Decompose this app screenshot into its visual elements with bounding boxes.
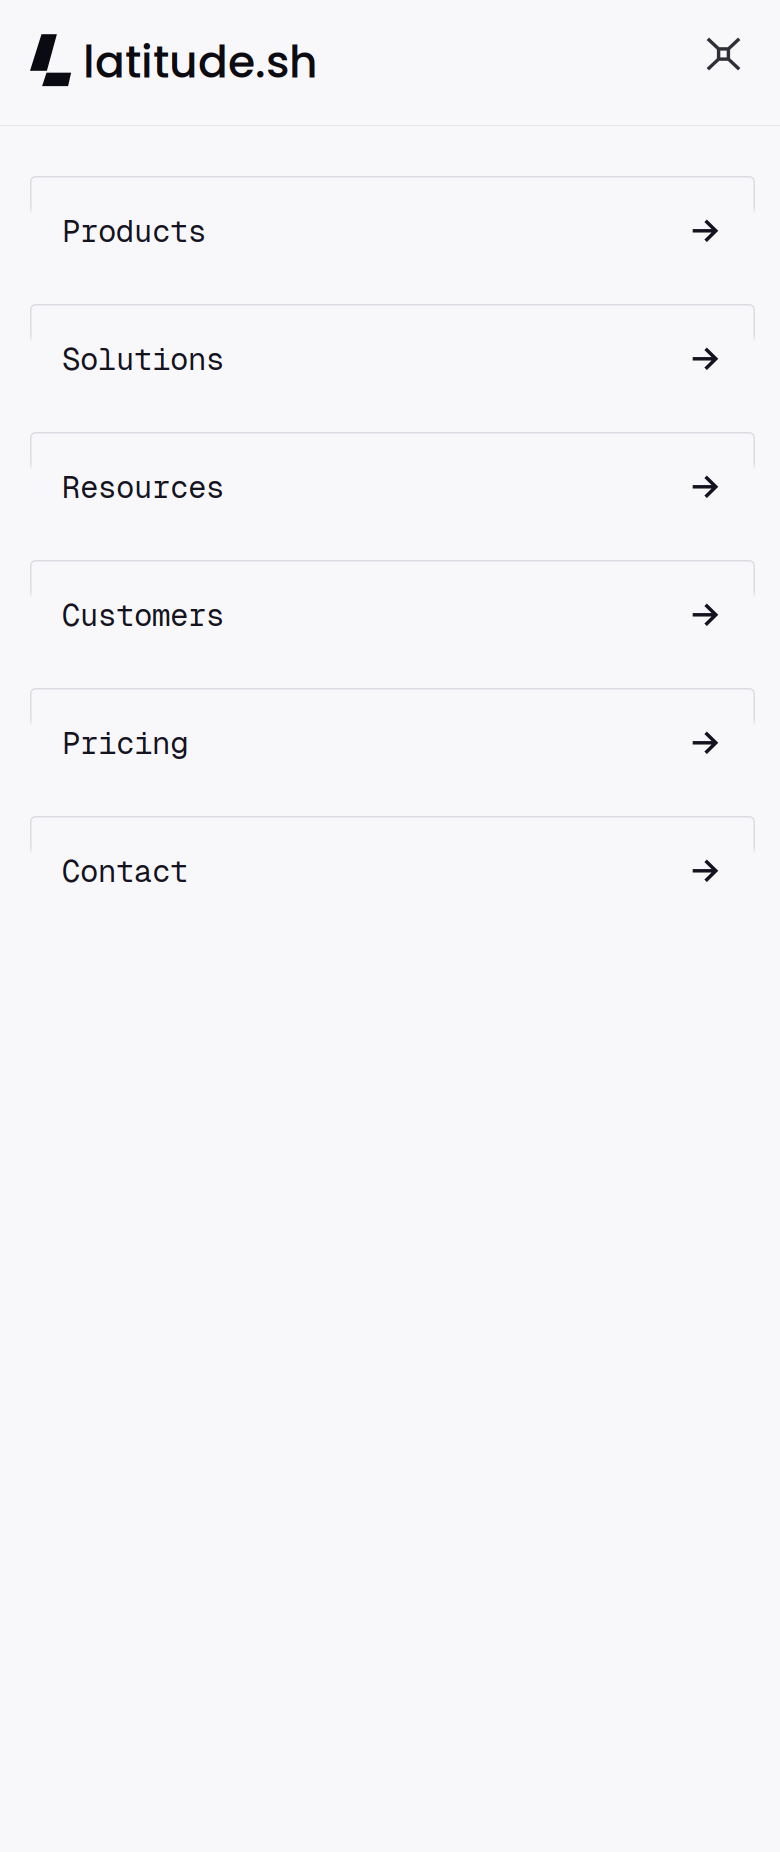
staticText: Contact	[62, 851, 188, 891]
staticText: Products	[62, 211, 206, 251]
button[interactable]: Customers	[30, 560, 755, 688]
staticText: Solutions	[62, 339, 224, 379]
button[interactable]: Contact	[30, 816, 755, 944]
button[interactable]: Pricing	[30, 688, 755, 816]
staticText: Resources	[62, 467, 224, 507]
button[interactable]: Close menu	[706, 37, 741, 71]
button[interactable]: Solutions	[30, 304, 755, 432]
staticText: Customers	[62, 595, 224, 635]
staticText: Pricing	[62, 723, 188, 763]
button[interactable]: Products	[30, 176, 755, 304]
button[interactable]: Resources	[30, 432, 755, 560]
button[interactable]: latitude.sh	[30, 31, 320, 91]
staticText: latitude.sh	[83, 31, 318, 93]
